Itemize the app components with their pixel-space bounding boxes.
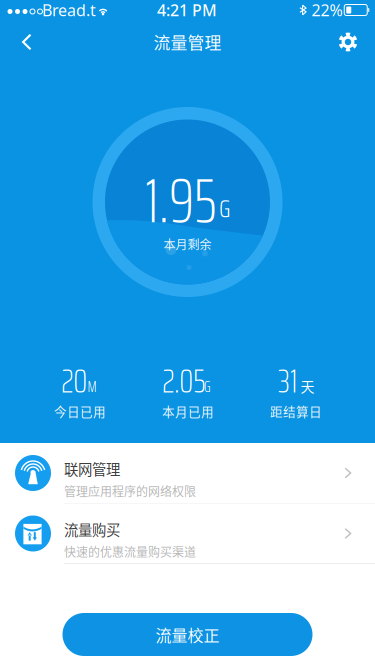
button[interactable]: 流量校正 xyxy=(62,613,312,656)
staticText: 流量校正 xyxy=(155,623,219,646)
staticText: 今日已用 xyxy=(54,402,106,420)
staticText: 管理应用程序的网络权限 xyxy=(64,482,196,500)
staticText: G xyxy=(219,189,230,228)
staticText: 31 xyxy=(278,355,298,407)
staticText: G xyxy=(204,375,211,399)
button[interactable]: Settings xyxy=(326,20,370,64)
staticText: 流量购买 xyxy=(64,519,120,540)
staticText: 4:21 PM xyxy=(157,0,217,21)
staticText: 本月已用 xyxy=(162,402,214,420)
staticText: 流量管理 xyxy=(153,30,221,54)
button[interactable]: Back xyxy=(5,20,49,64)
staticText: 22% xyxy=(311,0,342,21)
staticText: 距结算日 xyxy=(270,402,322,420)
staticText: M xyxy=(87,375,96,399)
staticText: 1.95 xyxy=(145,153,217,249)
staticText: 联网管理 xyxy=(64,458,120,479)
staticText: 天 xyxy=(301,376,315,396)
staticText: 本月剩余 xyxy=(163,235,211,253)
staticText: 2.05 xyxy=(162,355,205,407)
staticText: 20 xyxy=(61,355,87,407)
staticText: Bread.t xyxy=(42,0,96,21)
button[interactable]: 流量购买 xyxy=(0,503,375,563)
staticText: 快速的优惠流量购买渠道 xyxy=(64,543,196,560)
button[interactable]: 联网管理 xyxy=(0,443,375,503)
